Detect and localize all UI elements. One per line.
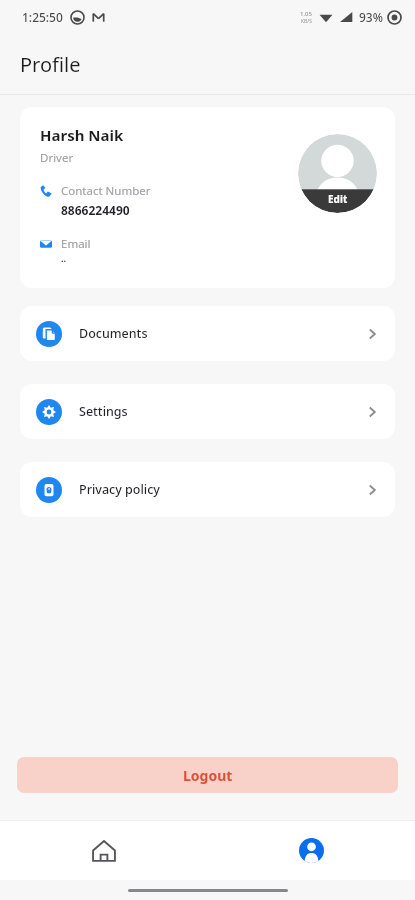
button[interactable]: Documents (20, 306, 395, 361)
staticText: Settings (79, 403, 128, 420)
staticText: Driver (40, 150, 74, 166)
button[interactable]: Privacy policy (20, 462, 395, 517)
button[interactable]: Harsh Naik (20, 107, 395, 288)
staticText: Harsh Naik (40, 125, 124, 145)
staticText: ·· (61, 254, 67, 266)
staticText: 1:25:50 (22, 9, 63, 25)
staticText: Contact Number (61, 183, 151, 199)
staticText: Edit (328, 192, 348, 206)
staticText: Documents (79, 325, 148, 342)
staticText: Profile (20, 51, 81, 78)
button[interactable]: Settings (20, 384, 395, 439)
staticText: 1.05 (300, 10, 312, 18)
staticText: 93% (359, 9, 383, 25)
staticText: KB/S (301, 18, 312, 25)
staticText: Privacy policy (79, 481, 160, 498)
button[interactable]: Edit profile photo (298, 134, 377, 213)
staticText: Email (61, 236, 91, 252)
button[interactable]: Home (0, 821, 207, 880)
button[interactable]: Logout (17, 757, 398, 793)
button[interactable]: Profile (207, 821, 415, 880)
staticText: 8866224490 (61, 202, 130, 218)
staticText: Logout (183, 766, 233, 785)
